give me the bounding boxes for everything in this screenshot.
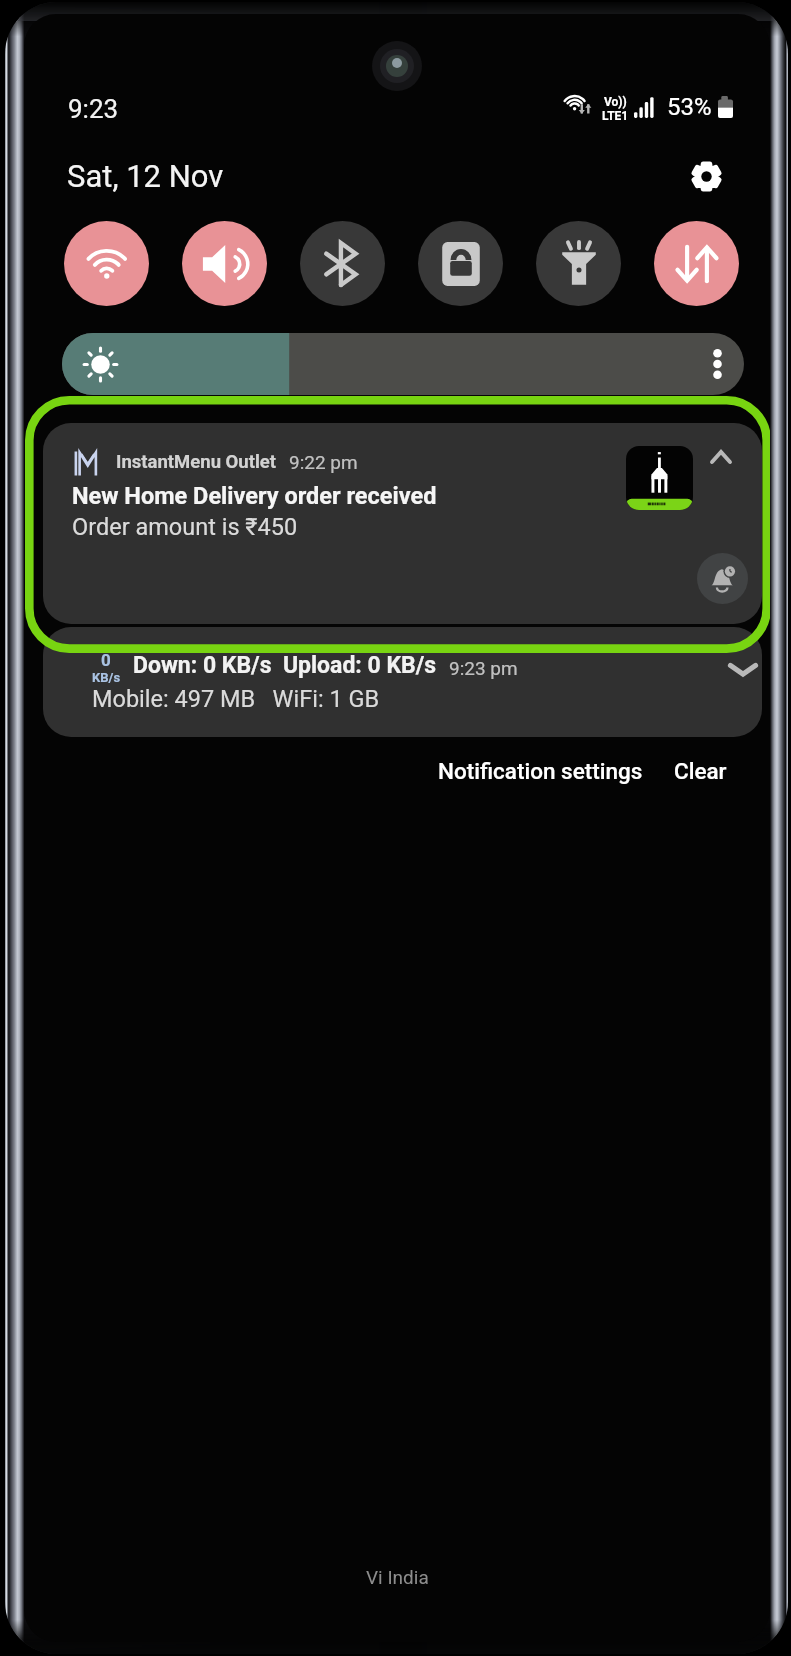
staticText: 9:22 pm <box>289 451 358 473</box>
staticText: LTE1 <box>602 109 628 123</box>
staticText: Vi India <box>366 1566 429 1588</box>
button[interactable]: Wi-Fi <box>64 221 149 306</box>
button[interactable]: Expand notification <box>721 647 762 691</box>
button[interactable]: Flashlight <box>536 221 621 306</box>
staticText: 0 <box>101 650 111 670</box>
button[interactable]: Settings <box>680 150 732 202</box>
staticText: 9:23 <box>68 94 119 124</box>
button[interactable]: Bluetooth <box>300 221 385 306</box>
staticText: Mobile: 497 MB WiFi: 1 GB <box>92 685 380 713</box>
button[interactable]: Auto rotate lock <box>418 221 503 306</box>
button[interactable]: Notification settings <box>432 750 649 792</box>
button[interactable]: Sound <box>182 221 267 306</box>
staticText: New Home Delivery order received <box>72 482 437 510</box>
button[interactable]: Snooze <box>697 553 748 604</box>
button[interactable]: Brightness <box>62 333 744 395</box>
staticText: Notification settings <box>438 758 643 784</box>
button[interactable]: InstantMenu Outlet <box>43 423 762 624</box>
staticText: Clear <box>674 758 727 784</box>
staticText: Vo)) <box>604 95 627 109</box>
button[interactable]: Collapse notification <box>697 433 745 481</box>
staticText: 9:23 pm <box>449 657 518 679</box>
staticText: InstantMenu Outlet <box>116 451 277 473</box>
button[interactable]: Mobile data <box>654 221 739 306</box>
button[interactable]: 0 <box>43 627 762 737</box>
staticText: Down: 0 KB/s Upload: 0 KB/s <box>133 652 437 679</box>
staticText: 53% <box>667 93 712 121</box>
staticText: Sat, 12 Nov <box>67 158 224 194</box>
staticText: Order amount is ₹450 <box>72 513 298 541</box>
staticText: KB/s <box>92 670 121 685</box>
button[interactable]: Clear <box>668 750 733 792</box>
